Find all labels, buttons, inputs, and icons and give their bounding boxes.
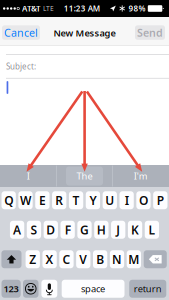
button[interactable]: Cancel	[2, 25, 40, 40]
button[interactable]: N	[110, 250, 124, 268]
staticText: 123	[4, 283, 19, 295]
staticText: T	[73, 192, 80, 208]
staticText: U	[105, 192, 114, 208]
button[interactable]: Dictate	[41, 280, 57, 298]
staticText: 98%	[128, 3, 145, 14]
staticText: N	[112, 251, 122, 267]
staticText: V	[79, 251, 87, 267]
button[interactable]: space	[62, 280, 124, 298]
staticText: K	[131, 222, 139, 238]
button[interactable]: I	[119, 191, 134, 209]
staticText: The	[76, 170, 92, 182]
staticText: G	[80, 222, 89, 238]
staticText: LTE	[43, 4, 54, 13]
button[interactable]: V	[76, 250, 90, 268]
staticText: O	[139, 192, 148, 208]
button[interactable]: Numbers	[1, 280, 21, 298]
button[interactable]: P	[153, 191, 167, 209]
staticText: Cancel	[4, 25, 38, 40]
staticText: P	[157, 192, 164, 208]
button[interactable]: J	[111, 221, 125, 239]
staticText: E	[39, 192, 46, 208]
staticText: return	[134, 283, 162, 295]
staticText: Q	[4, 192, 13, 208]
staticText: H	[97, 222, 106, 238]
button[interactable]: Send	[135, 25, 165, 40]
staticText: space	[81, 283, 105, 295]
button[interactable]: K	[128, 221, 142, 239]
button[interactable]: Y	[86, 191, 100, 209]
button[interactable]: Delete	[144, 250, 167, 268]
button[interactable]: R	[52, 191, 66, 209]
button[interactable]: H	[94, 221, 108, 239]
staticText: Subject:	[6, 61, 36, 72]
button[interactable]: return	[129, 280, 166, 298]
staticText: Y	[89, 192, 96, 208]
staticText: R	[55, 192, 63, 208]
staticText: S	[30, 222, 37, 238]
staticText: J	[116, 222, 120, 238]
button[interactable]: Q	[1, 191, 16, 209]
staticText: I'm	[134, 170, 148, 182]
button[interactable]: W	[18, 191, 33, 209]
button[interactable]: X	[42, 250, 57, 268]
staticText: A	[13, 222, 21, 238]
staticText: AT&T	[22, 3, 41, 14]
button[interactable]: D	[44, 221, 58, 239]
staticText: New Message	[53, 27, 115, 39]
staticText: I	[27, 170, 30, 182]
staticText: D	[46, 222, 55, 238]
button[interactable]: Emoji	[23, 280, 38, 298]
button[interactable]: F	[60, 221, 75, 239]
button[interactable]: E	[35, 191, 49, 209]
button[interactable]: Z	[26, 250, 40, 268]
button[interactable]: The	[57, 165, 112, 187]
button[interactable]: G	[77, 221, 92, 239]
staticText: Send	[137, 25, 163, 40]
staticText: 11:23 AM	[64, 3, 100, 14]
staticText: L	[148, 222, 155, 238]
staticText: X	[46, 251, 54, 267]
button[interactable]: Shift	[1, 250, 21, 268]
button[interactable]: M	[127, 250, 141, 268]
staticText: F	[65, 222, 71, 238]
staticText: Z	[29, 251, 36, 267]
button[interactable]: B	[93, 250, 107, 268]
staticText: C	[62, 251, 70, 267]
button[interactable]: L	[145, 221, 159, 239]
button[interactable]: A	[10, 221, 24, 239]
button[interactable]: U	[103, 191, 117, 209]
staticText: I	[125, 192, 129, 208]
button[interactable]: I'm	[113, 165, 168, 187]
button[interactable]: T	[69, 191, 83, 209]
staticText: W	[20, 192, 31, 208]
button[interactable]: C	[59, 250, 74, 268]
button[interactable]: I	[0, 165, 56, 187]
button[interactable]: S	[27, 221, 41, 239]
button[interactable]: O	[136, 191, 151, 209]
staticText: M	[128, 251, 139, 267]
staticText: B	[96, 251, 104, 267]
